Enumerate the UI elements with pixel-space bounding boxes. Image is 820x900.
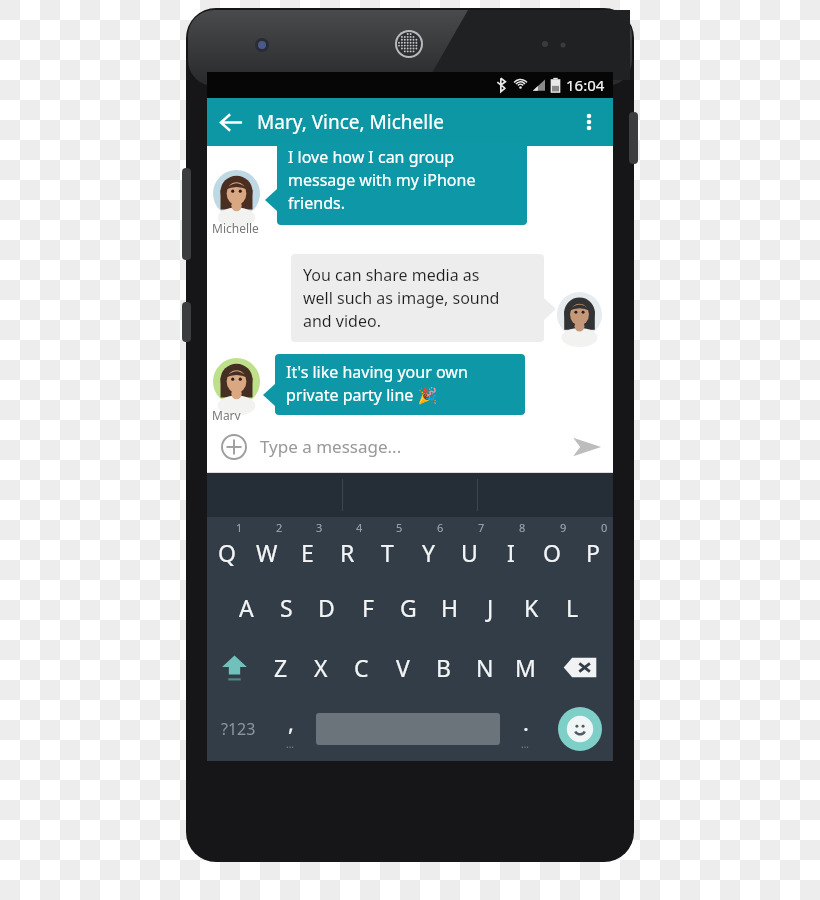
button[interactable]: , (269, 697, 312, 761)
button[interactable]: 9 (531, 517, 572, 577)
staticText: O (543, 537, 561, 568)
button[interactable]: J (470, 577, 511, 637)
button[interactable]: X (301, 637, 341, 697)
button[interactable]: V (382, 637, 423, 697)
button[interactable]: 7 (449, 517, 490, 577)
staticText: ... (286, 737, 295, 751)
staticText: I love how I can group message with my i… (288, 146, 476, 214)
staticText: 0 (601, 520, 608, 535)
button[interactable]: C (341, 637, 382, 697)
staticText: Mary, Vince, Michelle (257, 109, 444, 135)
staticText: Type a message... (260, 435, 560, 458)
staticText: 8 (519, 520, 526, 535)
staticText: 9 (560, 520, 567, 535)
button[interactable]: ?123 (207, 697, 269, 761)
staticText: K (524, 592, 539, 623)
staticText: W (256, 537, 278, 568)
button[interactable]: Space (312, 697, 504, 761)
staticText: 1 (236, 520, 243, 535)
button[interactable]: F (347, 577, 388, 637)
staticText: 3 (316, 520, 323, 535)
button[interactable]: Send (560, 420, 613, 473)
staticText: ?123 (221, 718, 256, 740)
button[interactable]: Shift (207, 637, 261, 697)
button[interactable]: 1 (207, 517, 247, 577)
button[interactable]: . (504, 697, 547, 761)
staticText: V (396, 652, 410, 683)
staticText: I (507, 537, 515, 568)
staticText: Mary (212, 407, 241, 423)
staticText: 2 (276, 520, 283, 535)
staticText: Y (422, 537, 436, 568)
staticText: 6 (437, 520, 444, 535)
button[interactable]: Z (261, 637, 301, 697)
button[interactable]: You can share media as well such as imag… (291, 254, 544, 342)
button[interactable]: 3 (287, 517, 327, 577)
staticText: U (461, 537, 478, 568)
staticText: R (340, 537, 355, 568)
button[interactable]: G (388, 577, 429, 637)
button[interactable]: I love how I can group message with my i… (277, 142, 527, 225)
staticText: J (487, 592, 494, 623)
staticText: X (314, 652, 328, 683)
staticText: N (476, 652, 494, 683)
staticText: It's like having your own private party … (286, 361, 468, 406)
staticText: B (436, 652, 451, 683)
button[interactable]: N (464, 637, 505, 697)
staticText: , (288, 707, 294, 737)
staticText: 5 (396, 520, 403, 535)
staticText: T (381, 537, 394, 568)
button[interactable]: 5 (367, 517, 408, 577)
button[interactable]: 0 (572, 517, 613, 577)
button[interactable]: More options (565, 98, 613, 146)
button[interactable]: B (423, 637, 464, 697)
staticText: D (318, 592, 335, 623)
staticText: . (523, 707, 529, 737)
staticText: Q (218, 537, 236, 568)
button[interactable]: K (511, 577, 552, 637)
staticText: H (441, 592, 459, 623)
button[interactable]: L (552, 577, 593, 637)
staticText: G (400, 592, 417, 623)
staticText: 7 (478, 520, 485, 535)
staticText: P (586, 537, 600, 568)
button[interactable]: 2 (247, 517, 287, 577)
button[interactable]: 4 (327, 517, 367, 577)
button[interactable]: A (226, 577, 266, 637)
button[interactable]: S (266, 577, 306, 637)
button[interactable]: Back (207, 98, 255, 146)
staticText: F (362, 592, 374, 623)
staticText: M (515, 652, 536, 683)
staticText: 16:04 (566, 75, 605, 95)
button[interactable]: Add attachment (207, 420, 260, 473)
button[interactable]: Emoji (547, 697, 613, 761)
staticText: 4 (356, 520, 363, 535)
staticText: Z (274, 652, 288, 683)
staticText: You can share media as well such as imag… (303, 264, 500, 332)
button[interactable]: 8 (490, 517, 531, 577)
staticText: C (354, 652, 369, 683)
button[interactable]: D (306, 577, 347, 637)
staticText: L (566, 592, 579, 623)
button[interactable]: It's like having your own private party … (275, 354, 525, 415)
staticText: E (301, 537, 314, 568)
staticText: ... (521, 737, 530, 751)
staticText: S (280, 592, 293, 623)
button[interactable]: 6 (408, 517, 449, 577)
button[interactable]: M (505, 637, 546, 697)
button[interactable]: H (429, 577, 470, 637)
staticText: Michelle (212, 220, 259, 236)
staticText: A (239, 592, 254, 623)
button[interactable]: Backspace (546, 637, 613, 697)
